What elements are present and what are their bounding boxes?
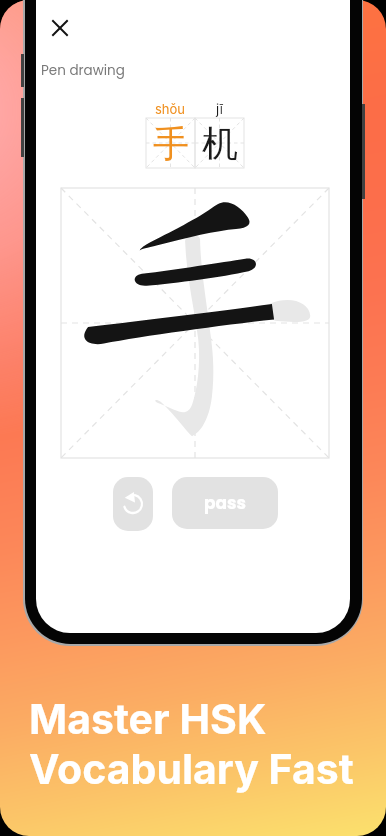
staticText: 机: [202, 121, 238, 166]
staticText: pass: [204, 491, 247, 515]
button[interactable]: pass: [172, 477, 278, 529]
staticText: 手: [153, 121, 189, 166]
button[interactable]: Undo: [113, 477, 153, 531]
staticText: Vocabulary Fast: [29, 744, 354, 794]
staticText: shǒu: [155, 101, 186, 117]
button[interactable]: Close: [40, 8, 80, 48]
staticText: Master HSK: [29, 694, 267, 744]
staticText: Pen drawing: [41, 61, 125, 80]
staticText: jī: [216, 101, 223, 117]
